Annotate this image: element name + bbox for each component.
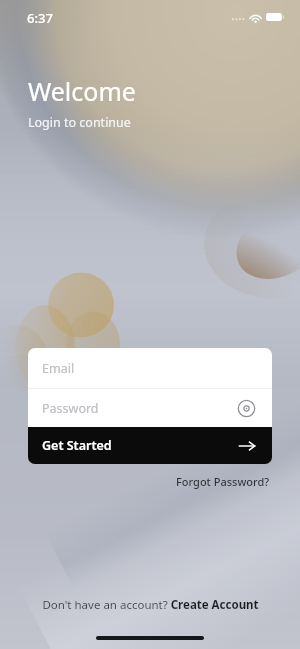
button[interactable]: Email [28, 348, 272, 388]
staticText: Email [42, 360, 75, 377]
button[interactable]: Password [28, 389, 272, 427]
button[interactable]: Get Started [28, 427, 272, 464]
staticText: Welcome [28, 74, 136, 108]
button[interactable]: Forgot Password? [174, 472, 272, 491]
staticText: Forgot Password? [176, 474, 270, 489]
button[interactable]: Don't have an account? Create Account [34, 593, 267, 617]
staticText: Login to continue [28, 114, 131, 131]
staticText: 6:37 [27, 9, 53, 27]
button[interactable]: Show password [234, 396, 258, 420]
staticText: Don't have an account? Create Account [42, 597, 259, 613]
staticText: Get Started [42, 437, 112, 454]
staticText: Password [42, 400, 99, 417]
